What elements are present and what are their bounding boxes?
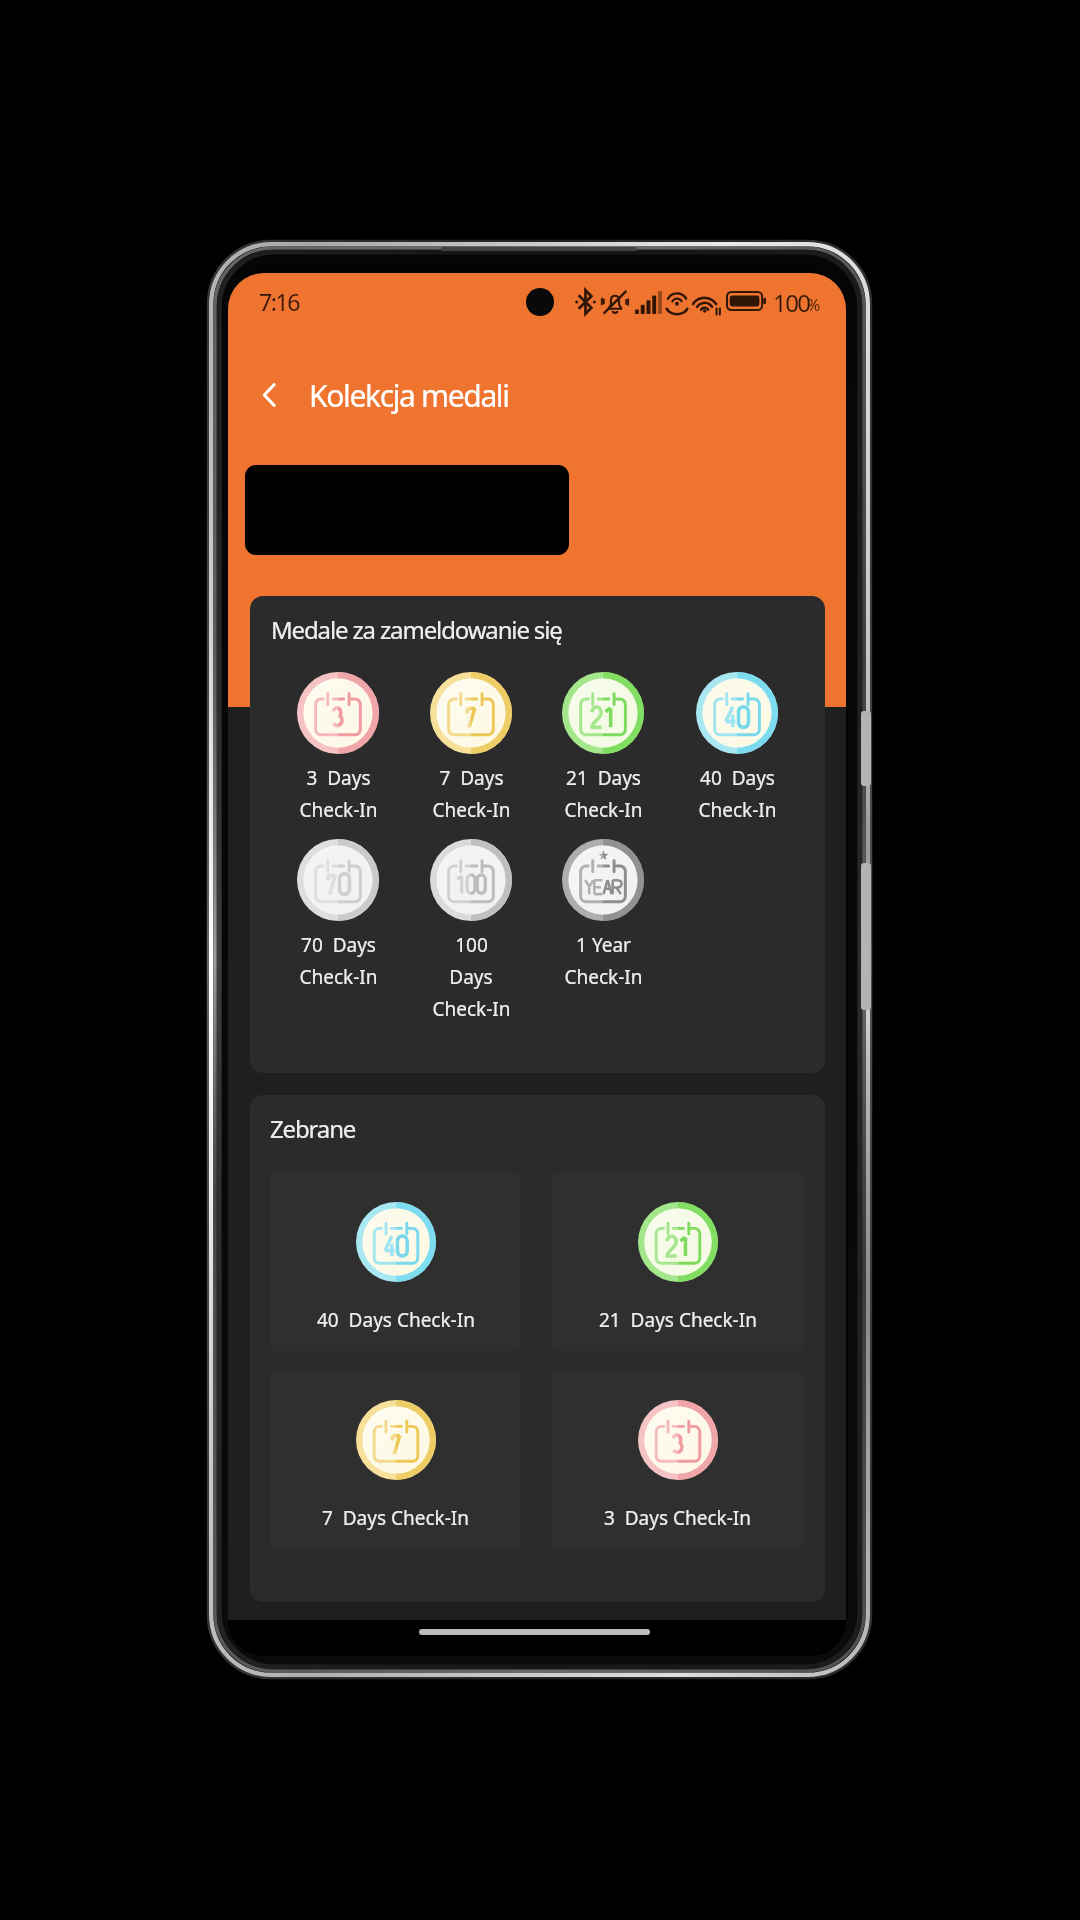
staticText: 3 Days Check-In	[604, 1505, 752, 1531]
staticText: %	[807, 294, 821, 316]
staticText: Check-In	[564, 797, 643, 823]
staticText: Zebrane	[270, 1112, 356, 1145]
staticText: 100	[455, 932, 488, 958]
button[interactable]: 7 Days	[405, 664, 537, 864]
staticText: Days	[449, 964, 493, 990]
button[interactable]: 100	[405, 831, 537, 1031]
staticText: 3 Days	[306, 765, 371, 791]
staticText: Kolekcja medali	[309, 375, 509, 416]
button[interactable]: Back	[248, 373, 292, 417]
staticText: 21 Days Check-In	[599, 1307, 757, 1333]
staticText: 7:16	[259, 286, 300, 317]
button[interactable]: 3 Days	[272, 664, 404, 864]
button[interactable]: 1 Year	[537, 831, 669, 1031]
staticText: 1 Year	[576, 932, 631, 958]
button[interactable]: 40 Days Check-In	[270, 1173, 521, 1351]
staticText: Check-In	[564, 964, 643, 990]
button[interactable]: 40 Days	[671, 664, 803, 864]
button[interactable]: 70 Days	[272, 831, 404, 1031]
staticText: Check-In	[432, 797, 511, 823]
staticText: 40 Days	[700, 765, 775, 791]
staticText: Check-In	[299, 797, 378, 823]
staticText: Check-In	[432, 996, 511, 1022]
staticText: 7 Days	[439, 765, 504, 791]
button[interactable]: 21 Days	[537, 664, 669, 864]
staticText: 7 Days Check-In	[322, 1505, 470, 1531]
staticText: Check-In	[299, 964, 378, 990]
staticText: 70 Days	[301, 932, 376, 958]
staticText: 40 Days Check-In	[317, 1307, 475, 1333]
staticText: 100	[773, 286, 810, 319]
staticText: Medale za zameldowanie się	[271, 613, 562, 646]
button[interactable]: 21 Days Check-In	[552, 1173, 803, 1351]
button[interactable]: 3 Days Check-In	[552, 1371, 803, 1549]
button[interactable]: 7 Days Check-In	[270, 1371, 521, 1549]
staticText: Check-In	[698, 797, 777, 823]
staticText: 21 Days	[566, 765, 641, 791]
